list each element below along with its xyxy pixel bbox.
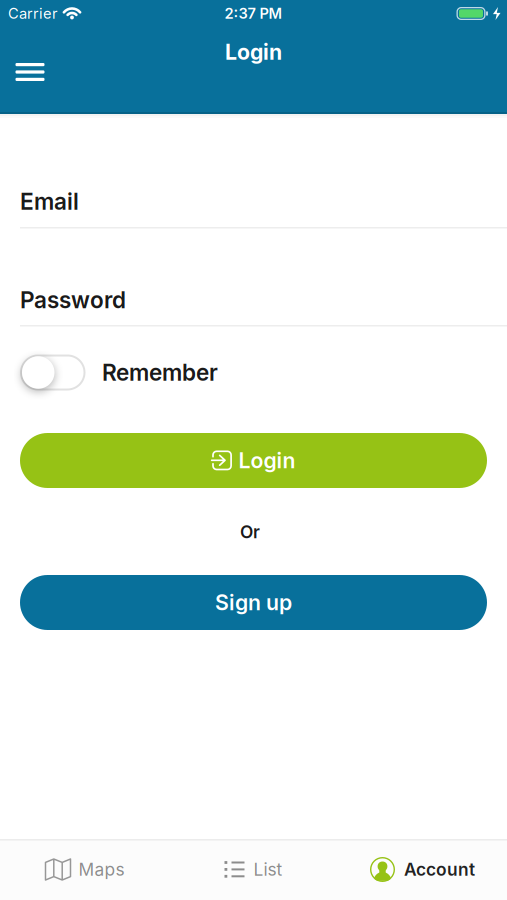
button[interactable]: Login (20, 433, 487, 488)
staticText: Account (404, 859, 475, 880)
staticText: Carrier (8, 5, 58, 22)
staticText: Remember (102, 359, 218, 386)
staticText: Login (225, 39, 282, 65)
button[interactable]: Email (0, 174, 507, 230)
staticText: 2:37 PM (224, 5, 282, 22)
staticText: Password (20, 287, 126, 313)
button[interactable]: Maps (0, 839, 169, 900)
button[interactable]: List (169, 839, 338, 900)
staticText: Or (240, 522, 260, 542)
button[interactable]: Remember (20, 354, 85, 390)
button[interactable]: Sign up (20, 575, 487, 630)
staticText: List (253, 859, 282, 880)
button[interactable]: Password (0, 272, 507, 328)
staticText: Email (20, 188, 79, 215)
button[interactable]: Account (338, 839, 507, 900)
button[interactable]: Menu (8, 55, 52, 89)
staticText: Sign up (215, 590, 292, 615)
staticText: Login (238, 448, 295, 473)
staticText: Maps (78, 859, 124, 880)
